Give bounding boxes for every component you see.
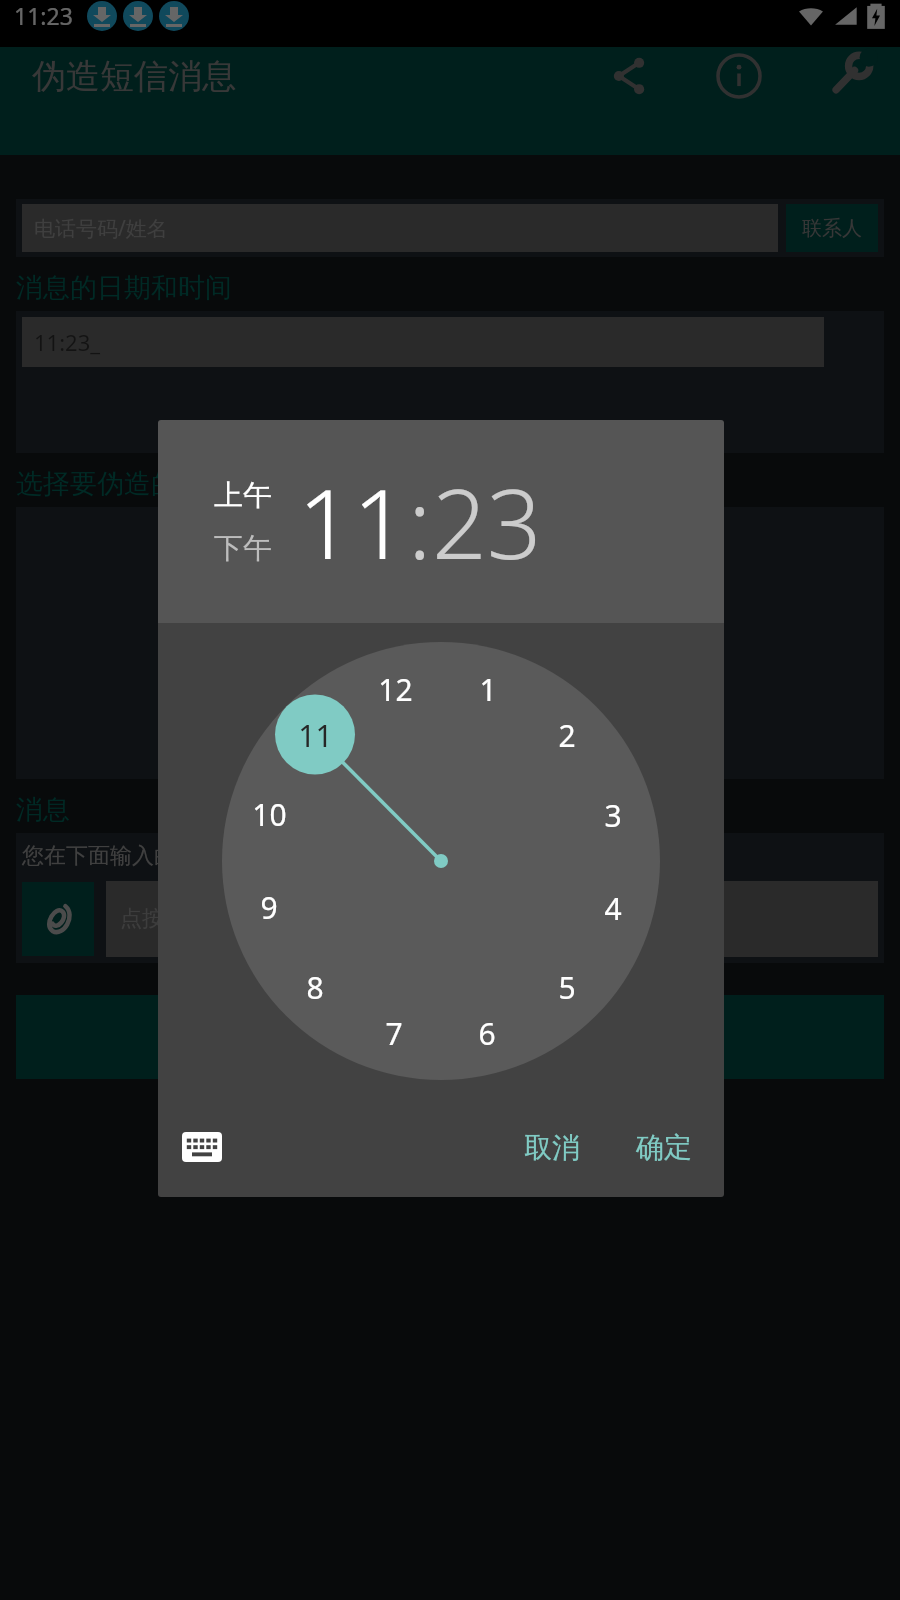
button[interactable]: 23 <box>432 456 542 587</box>
staticText: 上午 <box>214 477 272 514</box>
staticText: 下午 <box>214 530 272 567</box>
button[interactable]: 取消 <box>510 1122 594 1173</box>
staticText: 11:23 <box>14 0 73 31</box>
button[interactable]: 5 <box>541 965 593 1009</box>
button[interactable]: 9 <box>243 885 295 929</box>
button[interactable]: Info <box>710 47 768 105</box>
staticText: 1 <box>479 669 497 710</box>
staticText: 7 <box>385 1013 403 1054</box>
button[interactable]: Settings <box>820 47 878 105</box>
staticText: 2 <box>558 715 576 756</box>
staticText: 4 <box>604 888 622 929</box>
staticText: 点按即可撰写信息 <box>120 905 296 933</box>
staticText: 23 <box>432 456 542 587</box>
staticText: 3 <box>604 795 622 836</box>
staticText: 12 <box>378 669 413 710</box>
staticText: 电话号码/姓名 <box>34 214 168 243</box>
staticText: 8 <box>306 967 324 1008</box>
button[interactable]: 1 <box>462 667 514 711</box>
button[interactable]: 下午 <box>212 528 274 569</box>
button[interactable]: 7 <box>368 1011 420 1055</box>
button[interactable]: 12 <box>369 667 421 711</box>
staticText: 确定 <box>636 1130 692 1165</box>
button[interactable]: 点按即可撰写信息 <box>106 881 878 957</box>
button[interactable]: Attach <box>22 882 94 956</box>
button[interactable]: 联系人 <box>786 204 878 252</box>
button[interactable]: Keyboard input <box>176 1121 228 1173</box>
button[interactable]: 6 <box>461 1011 513 1055</box>
staticText: 11 <box>298 715 333 756</box>
staticText: 选择要伪造的消息 <box>16 467 232 501</box>
staticText: 11 <box>298 456 408 587</box>
button[interactable]: 上午 <box>212 475 274 516</box>
button[interactable]: 11 <box>298 456 408 587</box>
staticText: 消息的日期和时间 <box>16 271 232 305</box>
staticText: 5 <box>558 967 576 1008</box>
staticText: 您在下面输入的信息不会发送给任何人。 您只需立即通过手机接收即可。 <box>22 839 732 869</box>
staticText: 取消 <box>524 1130 580 1165</box>
staticText: 联系人 <box>802 216 862 241</box>
button[interactable]: 3 <box>587 793 639 837</box>
button[interactable]: 2 <box>541 713 593 757</box>
staticText: 11:23_ <box>34 327 101 357</box>
staticText: 消息 <box>16 793 70 827</box>
staticText: : <box>408 456 432 587</box>
button[interactable]: 8 <box>289 965 341 1009</box>
button[interactable]: Share <box>600 47 658 105</box>
staticText: 9 <box>260 887 278 928</box>
button[interactable]: 确定 <box>622 1122 706 1173</box>
staticText: 6 <box>478 1013 496 1054</box>
button[interactable]: 10 <box>243 792 295 836</box>
button[interactable]: 伪造 <box>16 995 884 1079</box>
staticText: 10 <box>252 794 287 835</box>
button[interactable]: 4 <box>587 886 639 930</box>
staticText: 伪造短信消息 <box>32 55 236 98</box>
button[interactable]: 11 <box>289 713 341 757</box>
